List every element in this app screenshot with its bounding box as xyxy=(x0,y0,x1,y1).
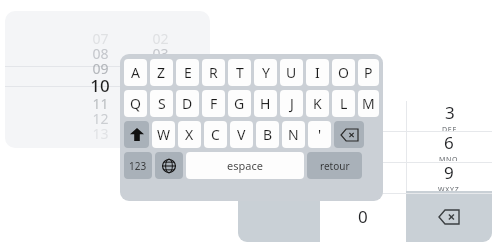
staticText: 9 xyxy=(444,161,454,184)
staticText: Q xyxy=(130,94,141,113)
button[interactable]: U xyxy=(280,59,303,86)
button[interactable]: V xyxy=(230,121,253,148)
staticText: 12 xyxy=(92,109,109,124)
button[interactable]: 07 xyxy=(140,109,180,124)
button[interactable]: W xyxy=(152,121,175,148)
button[interactable]: O xyxy=(332,59,355,86)
button[interactable]: espace xyxy=(186,152,304,179)
button[interactable]: 1 xyxy=(238,101,320,131)
button[interactable]: 123 xyxy=(124,152,152,179)
staticText: N xyxy=(288,125,299,144)
staticText: MNO xyxy=(439,155,459,161)
button[interactable]: 13 xyxy=(80,124,120,139)
button[interactable]: 09 xyxy=(140,139,180,148)
button[interactable]: 0 xyxy=(320,191,406,242)
staticText: H xyxy=(260,94,271,113)
staticText: ABC xyxy=(355,125,371,131)
staticText: 3 xyxy=(445,101,455,124)
button[interactable]: R xyxy=(202,59,225,86)
staticText: WXYZ xyxy=(438,185,460,191)
button[interactable]: Backspace xyxy=(334,121,364,148)
button[interactable]: D xyxy=(176,90,199,117)
button[interactable]: K xyxy=(306,90,329,117)
button[interactable]: Shift xyxy=(124,121,149,148)
staticText: F xyxy=(210,94,218,113)
button[interactable]: J xyxy=(280,90,303,117)
button[interactable]: Y xyxy=(254,59,277,86)
button[interactable]: 02 xyxy=(140,29,180,44)
staticText: L xyxy=(340,94,348,113)
button[interactable]: 06 xyxy=(140,94,180,109)
button[interactable]: X xyxy=(178,121,201,148)
button[interactable]: Q xyxy=(124,90,147,117)
button[interactable]: H xyxy=(254,90,277,117)
button[interactable]: 2 xyxy=(320,101,406,131)
button[interactable]: 12 xyxy=(80,109,120,124)
button[interactable]: 4 xyxy=(238,131,320,161)
button[interactable]: B xyxy=(256,121,279,148)
button[interactable]: 3 xyxy=(406,101,492,131)
button[interactable]: retour xyxy=(307,152,362,179)
staticText: 09 xyxy=(152,139,169,148)
staticText: E xyxy=(184,63,192,82)
button[interactable]: 04 xyxy=(140,59,180,74)
button[interactable]: G xyxy=(228,90,251,117)
staticText: W xyxy=(157,125,171,144)
staticText: 09 xyxy=(92,59,109,74)
staticText: 5 xyxy=(359,131,369,154)
button[interactable]: 9 xyxy=(406,161,492,191)
staticText: 10 xyxy=(90,74,110,94)
button[interactable]: A xyxy=(124,59,147,86)
button[interactable]: 10 xyxy=(80,74,120,94)
staticText: JKL xyxy=(357,155,370,161)
button[interactable]: 07 xyxy=(80,29,120,44)
button[interactable]: 8 xyxy=(320,161,406,191)
staticText: 11 xyxy=(92,94,109,109)
staticText: 2 xyxy=(358,101,368,124)
button[interactable]: M xyxy=(358,90,379,117)
button[interactable]: 5 xyxy=(320,131,406,161)
button[interactable]: 09 xyxy=(80,59,120,74)
button[interactable]: 05 xyxy=(140,74,180,94)
button[interactable]: 11 xyxy=(80,94,120,109)
button[interactable]: T xyxy=(228,59,251,86)
button[interactable]: Backspace xyxy=(406,191,492,242)
button[interactable]: 08 xyxy=(80,44,120,59)
button[interactable]: Z xyxy=(150,59,173,86)
staticText: 07 xyxy=(152,109,169,124)
button[interactable]: E xyxy=(176,59,199,86)
staticText: 8 xyxy=(358,161,368,184)
staticText: 08 xyxy=(152,124,169,139)
staticText: Z xyxy=(157,63,166,82)
staticText: X xyxy=(185,125,194,144)
button[interactable]: ' xyxy=(308,121,331,148)
staticText: 7 xyxy=(275,161,285,184)
button[interactable]: P xyxy=(358,59,379,86)
button[interactable]: Change keyboard xyxy=(155,152,183,179)
staticText: D xyxy=(182,94,193,113)
button[interactable] xyxy=(238,191,320,242)
staticText: 03 xyxy=(152,44,169,59)
staticText: U xyxy=(286,63,297,82)
staticText: 123 xyxy=(129,159,147,173)
button[interactable]: L xyxy=(332,90,355,117)
button[interactable]: C xyxy=(204,121,227,148)
button[interactable]: I xyxy=(306,59,329,86)
staticText: 4 xyxy=(275,131,285,154)
button[interactable]: 03 xyxy=(140,44,180,59)
staticText: O xyxy=(338,63,349,82)
button[interactable]: 08 xyxy=(140,124,180,139)
button[interactable]: 6 xyxy=(406,131,492,161)
button[interactable]: F xyxy=(202,90,225,117)
button[interactable]: 7 xyxy=(238,161,320,191)
button[interactable]: S xyxy=(150,90,173,117)
button[interactable]: N xyxy=(282,121,305,148)
staticText: A xyxy=(131,63,140,82)
